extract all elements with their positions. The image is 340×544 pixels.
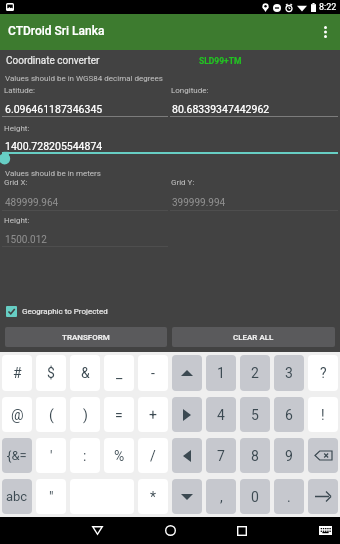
button[interactable]: 7 — [206, 438, 236, 473]
button[interactable]: - — [138, 355, 168, 391]
button[interactable]: " — [36, 479, 66, 514]
button[interactable]: : — [70, 438, 100, 473]
staticText: * — [150, 489, 157, 505]
other: Delete — [314, 450, 333, 461]
staticText: Coordinate converter — [6, 55, 100, 67]
staticText: % — [114, 448, 125, 464]
button[interactable]: 4 — [206, 397, 236, 432]
button[interactable]: @ — [2, 397, 32, 432]
staticText: Values should be in meters — [5, 169, 101, 178]
button[interactable]: Delete — [308, 438, 338, 473]
staticText: ! — [321, 407, 325, 423]
staticText: 8 — [251, 448, 259, 464]
other: Move up — [181, 370, 193, 376]
button[interactable]: 9 — [274, 438, 304, 473]
staticText: & — [81, 365, 90, 381]
staticText: Longitude: — [171, 86, 209, 95]
button[interactable]: ! — [308, 397, 338, 432]
staticText: Grid X: — [4, 178, 28, 187]
staticText: _ — [116, 365, 123, 381]
button[interactable]: Enter — [308, 479, 338, 514]
staticText: ' — [50, 448, 53, 464]
staticText: - — [151, 365, 155, 381]
button[interactable]: = — [104, 397, 134, 432]
staticText: Values should be in WGS84 decimal degree… — [5, 74, 163, 83]
staticText: 1 — [217, 365, 225, 381]
staticText: ? — [320, 365, 327, 381]
staticText: Height: — [4, 124, 30, 133]
staticText: = — [115, 407, 123, 423]
staticText: 5 — [251, 407, 259, 423]
button[interactable]: Move up — [172, 355, 202, 391]
button[interactable]: % — [104, 438, 134, 473]
button[interactable]: . — [274, 479, 304, 514]
button[interactable]: ' — [36, 438, 66, 473]
button[interactable]: More options — [310, 14, 340, 50]
other: Move left — [183, 450, 191, 462]
staticText: 3 — [285, 365, 293, 381]
button[interactable]: CLEAR ALL — [172, 327, 335, 347]
staticText: @ — [11, 407, 24, 423]
staticText: CLEAR ALL — [233, 333, 274, 342]
staticText: $ — [47, 365, 55, 381]
button[interactable]: Move down — [172, 479, 202, 514]
button[interactable]: & — [70, 355, 100, 391]
staticText: : — [83, 448, 87, 464]
staticText: Height: — [4, 216, 30, 225]
staticText: Grid Y: — [171, 178, 195, 187]
staticText: 7 — [217, 448, 225, 464]
staticText: {&= — [7, 448, 27, 463]
button[interactable]: Geographic to Projected — [6, 301, 108, 321]
staticText: 399999.994 — [172, 197, 226, 209]
other: Enter — [315, 491, 332, 502]
staticText: 4 — [217, 407, 225, 423]
button[interactable]: , — [206, 479, 236, 514]
staticText: 2 — [251, 365, 259, 381]
staticText: + — [149, 407, 157, 423]
button[interactable]: abc — [2, 479, 32, 514]
button[interactable]: / — [138, 438, 168, 473]
button[interactable]: 8 — [240, 438, 270, 473]
staticText: 80.68339347442962 — [172, 103, 270, 115]
button[interactable]: 2 — [240, 355, 270, 391]
staticText: , — [220, 489, 223, 505]
button[interactable]: # — [2, 355, 32, 391]
button[interactable]: Recents — [228, 517, 256, 544]
staticText: 0 — [251, 489, 259, 505]
staticText: ) — [83, 407, 88, 423]
button[interactable]: * — [138, 479, 168, 514]
staticText: 9 — [285, 448, 293, 464]
staticText: TRANSFORM — [62, 333, 110, 342]
button[interactable]: Home — [156, 517, 184, 544]
button[interactable]: ? — [308, 355, 338, 391]
staticText: SLD99+TM — [199, 56, 242, 66]
staticText: 8:22 — [319, 2, 337, 13]
other: Screenshot — [6, 3, 14, 11]
button[interactable]: Switch keyboard — [313, 517, 337, 544]
other: Move down — [181, 494, 193, 500]
button[interactable]: {&= — [2, 438, 32, 473]
button[interactable]: 3 — [274, 355, 304, 391]
staticText: " — [49, 489, 54, 505]
button[interactable]: ( — [36, 397, 66, 432]
button[interactable]: Move left — [172, 438, 202, 473]
staticText: 489999.964 — [5, 197, 59, 209]
staticText: / — [150, 448, 156, 464]
staticText: CTDroid Sri Lanka — [8, 24, 105, 38]
button[interactable]: 6 — [274, 397, 304, 432]
staticText: Latitude: — [4, 86, 35, 95]
button[interactable]: Move right — [172, 397, 202, 432]
staticText: 6.096461187346345 — [5, 103, 103, 115]
button[interactable]: $ — [36, 355, 66, 391]
button[interactable]: Back — [83, 517, 111, 544]
button[interactable]: + — [138, 397, 168, 432]
button[interactable]: ) — [70, 397, 100, 432]
button[interactable]: 1 — [206, 355, 236, 391]
button[interactable]: 0 — [240, 479, 270, 514]
button[interactable]: TRANSFORM — [5, 327, 167, 347]
other: Move right — [183, 409, 191, 421]
staticText: Geographic to Projected — [22, 307, 108, 316]
button[interactable]: 5 — [240, 397, 270, 432]
button[interactable]: _ — [104, 355, 134, 391]
